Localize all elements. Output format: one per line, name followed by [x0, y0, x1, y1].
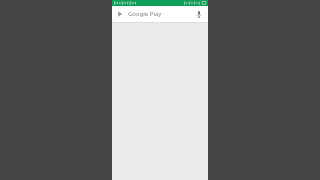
staticText: Google Play: [128, 10, 194, 18]
button[interactable]: Google Play: [114, 8, 206, 20]
button[interactable]: Voice search: [194, 9, 204, 19]
button[interactable]: Google Play: [116, 10, 124, 18]
